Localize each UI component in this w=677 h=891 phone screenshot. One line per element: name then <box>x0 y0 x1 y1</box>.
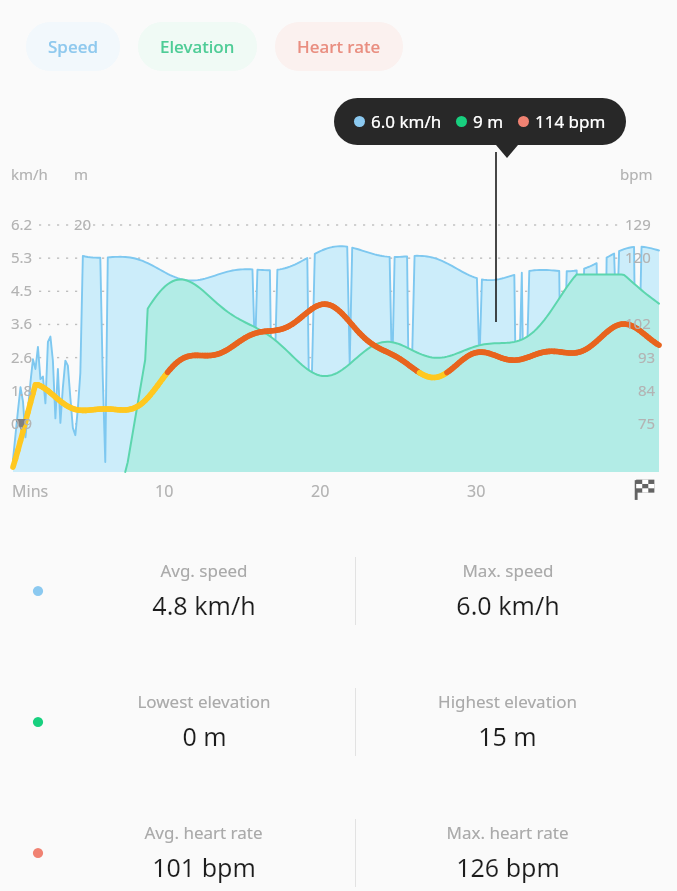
staticText: 93 <box>638 347 656 367</box>
staticText: Heart rate <box>297 35 381 58</box>
staticText: 6.0 km/h <box>371 110 442 133</box>
staticText: 114 bpm <box>535 110 606 133</box>
staticText: 6.0 km/h <box>456 588 560 622</box>
staticText: 9 m <box>473 110 504 133</box>
staticText: 120 <box>625 247 651 267</box>
button[interactable]: Heart rate <box>275 22 403 71</box>
staticText: 5.3 <box>11 247 33 267</box>
staticText: Highest elevation <box>438 690 577 713</box>
staticText: 2.6 <box>11 347 33 367</box>
staticText: 0.9 <box>11 413 33 433</box>
staticText: 3.6 <box>11 313 33 333</box>
staticText: Avg. speed <box>160 559 248 582</box>
staticText: 30 <box>467 480 486 502</box>
staticText: 4.8 km/h <box>152 588 256 622</box>
staticText: 102 <box>625 313 651 333</box>
staticText: 0 m <box>182 719 227 753</box>
staticText: 1.8 <box>11 380 33 400</box>
other: Finish <box>632 476 658 502</box>
staticText: Elevation <box>160 35 235 58</box>
staticText: Max. speed <box>462 559 554 582</box>
button[interactable]: Elevation <box>138 22 257 71</box>
staticText: km/h <box>11 164 48 184</box>
staticText: 4.5 <box>11 280 33 300</box>
staticText: 126 bpm <box>456 850 560 884</box>
staticText: 20 <box>311 480 330 502</box>
button[interactable]: 6.0 km/h <box>334 98 626 145</box>
staticText: Max. heart rate <box>446 821 569 844</box>
staticText: 129 <box>625 214 651 234</box>
staticText: 75 <box>638 413 656 433</box>
staticText: 10 <box>155 480 174 502</box>
staticText: Mins <box>12 480 49 502</box>
button[interactable]: Speed <box>26 22 120 71</box>
staticText: 6.2 <box>11 214 33 234</box>
staticText: Lowest elevation <box>137 690 271 713</box>
staticText: 84 <box>638 380 656 400</box>
staticText: 101 bpm <box>152 850 256 884</box>
staticText: 20 <box>74 214 92 234</box>
staticText: Speed <box>48 35 98 58</box>
staticText: bpm <box>620 164 653 184</box>
staticText: Avg. heart rate <box>144 821 263 844</box>
staticText: m <box>74 164 89 184</box>
staticText: 15 m <box>478 719 537 753</box>
